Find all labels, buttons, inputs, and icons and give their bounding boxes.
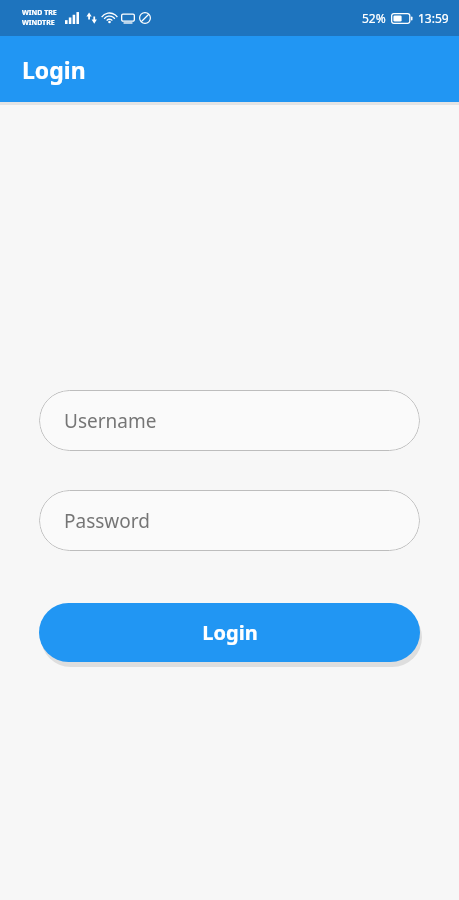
staticText: 52% [362, 10, 386, 26]
staticText: WIND TRE [22, 8, 57, 18]
staticText: Password [64, 508, 150, 534]
button[interactable]: Login [39, 603, 420, 662]
button[interactable]: Password [39, 490, 420, 551]
staticText: WINDTRE [22, 18, 55, 28]
staticText: 13:59 [418, 10, 449, 26]
staticText: Login [22, 54, 86, 85]
staticText: Login [202, 619, 258, 646]
staticText: Username [64, 408, 157, 434]
button[interactable]: Username [39, 390, 420, 451]
